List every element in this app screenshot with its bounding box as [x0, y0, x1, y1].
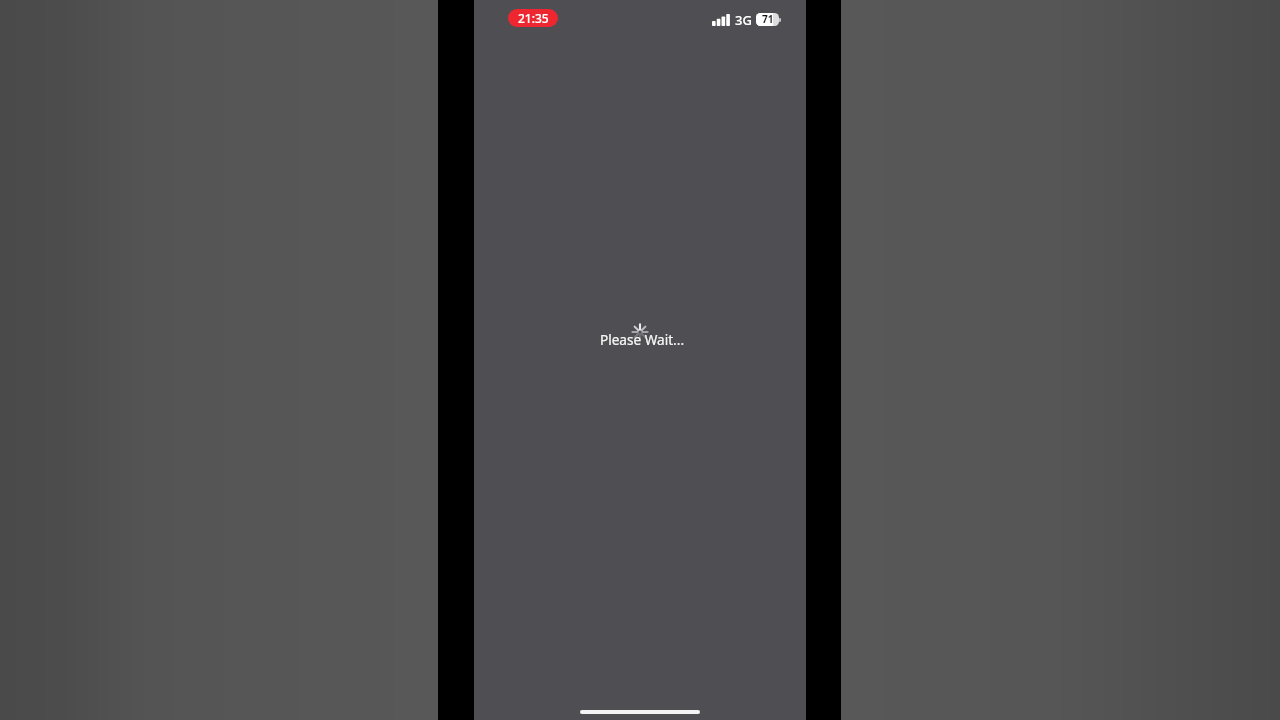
staticText: Please Wait... [476, 330, 808, 349]
other: Loading [630, 322, 650, 342]
button[interactable]: Cellular signal strength [712, 14, 731, 26]
button[interactable]: Screen recording, 21:35 [508, 9, 558, 27]
button[interactable]: Home [580, 710, 700, 714]
staticText: 71 [762, 13, 774, 25]
button[interactable]: Battery 71 percent [756, 13, 782, 26]
staticText: 21:35 [518, 10, 549, 26]
staticText: 3G [735, 11, 752, 29]
